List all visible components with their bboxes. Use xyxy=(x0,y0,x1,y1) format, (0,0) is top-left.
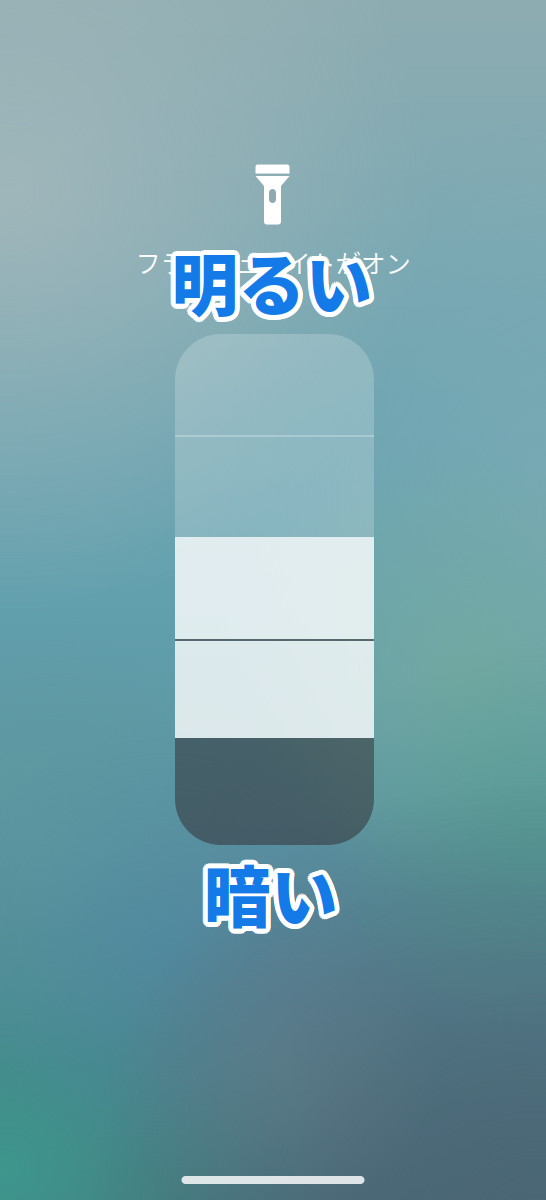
staticText: 明るい xyxy=(175,236,376,333)
staticText: 明るい xyxy=(168,229,369,326)
staticText: 明るい xyxy=(171,238,372,334)
staticText: 明るい xyxy=(170,228,371,325)
staticText: 暗い xyxy=(204,845,338,941)
staticText: 暗い xyxy=(206,840,340,937)
staticText: 明るい xyxy=(167,231,368,327)
staticText: 明るい xyxy=(167,235,368,331)
staticText: 明るい xyxy=(171,233,372,329)
staticText: 明るい xyxy=(166,233,367,329)
staticText: 暗い xyxy=(209,847,343,943)
staticText: 暗い xyxy=(206,849,340,946)
staticText: 明るい xyxy=(173,237,374,334)
staticText: 暗い xyxy=(199,847,333,943)
staticText: 暗い xyxy=(200,841,334,938)
staticText: フラッシュライトがオン xyxy=(135,244,410,280)
staticText: 暗い xyxy=(207,841,341,938)
staticText: 暗い xyxy=(204,840,338,936)
staticText: 暗い xyxy=(204,850,338,946)
staticText: 暗い xyxy=(199,845,333,941)
staticText: 暗い xyxy=(207,848,341,945)
staticText: 明るい xyxy=(176,235,377,331)
staticText: 明るい xyxy=(171,228,372,324)
staticText: 暗い xyxy=(200,848,334,945)
staticText: 明るい xyxy=(176,233,377,329)
staticText: 明るい xyxy=(168,236,369,333)
staticText: 明るい xyxy=(170,237,371,334)
staticText: 暗い xyxy=(209,845,343,941)
staticText: 暗い xyxy=(202,840,336,937)
staticText: 明るい xyxy=(176,231,377,327)
staticText: 明るい xyxy=(173,228,374,325)
staticText: 暗い xyxy=(209,843,343,939)
staticText: 暗い xyxy=(199,843,333,939)
staticText: 暗い xyxy=(202,849,336,946)
staticText: 明るい xyxy=(175,229,376,326)
